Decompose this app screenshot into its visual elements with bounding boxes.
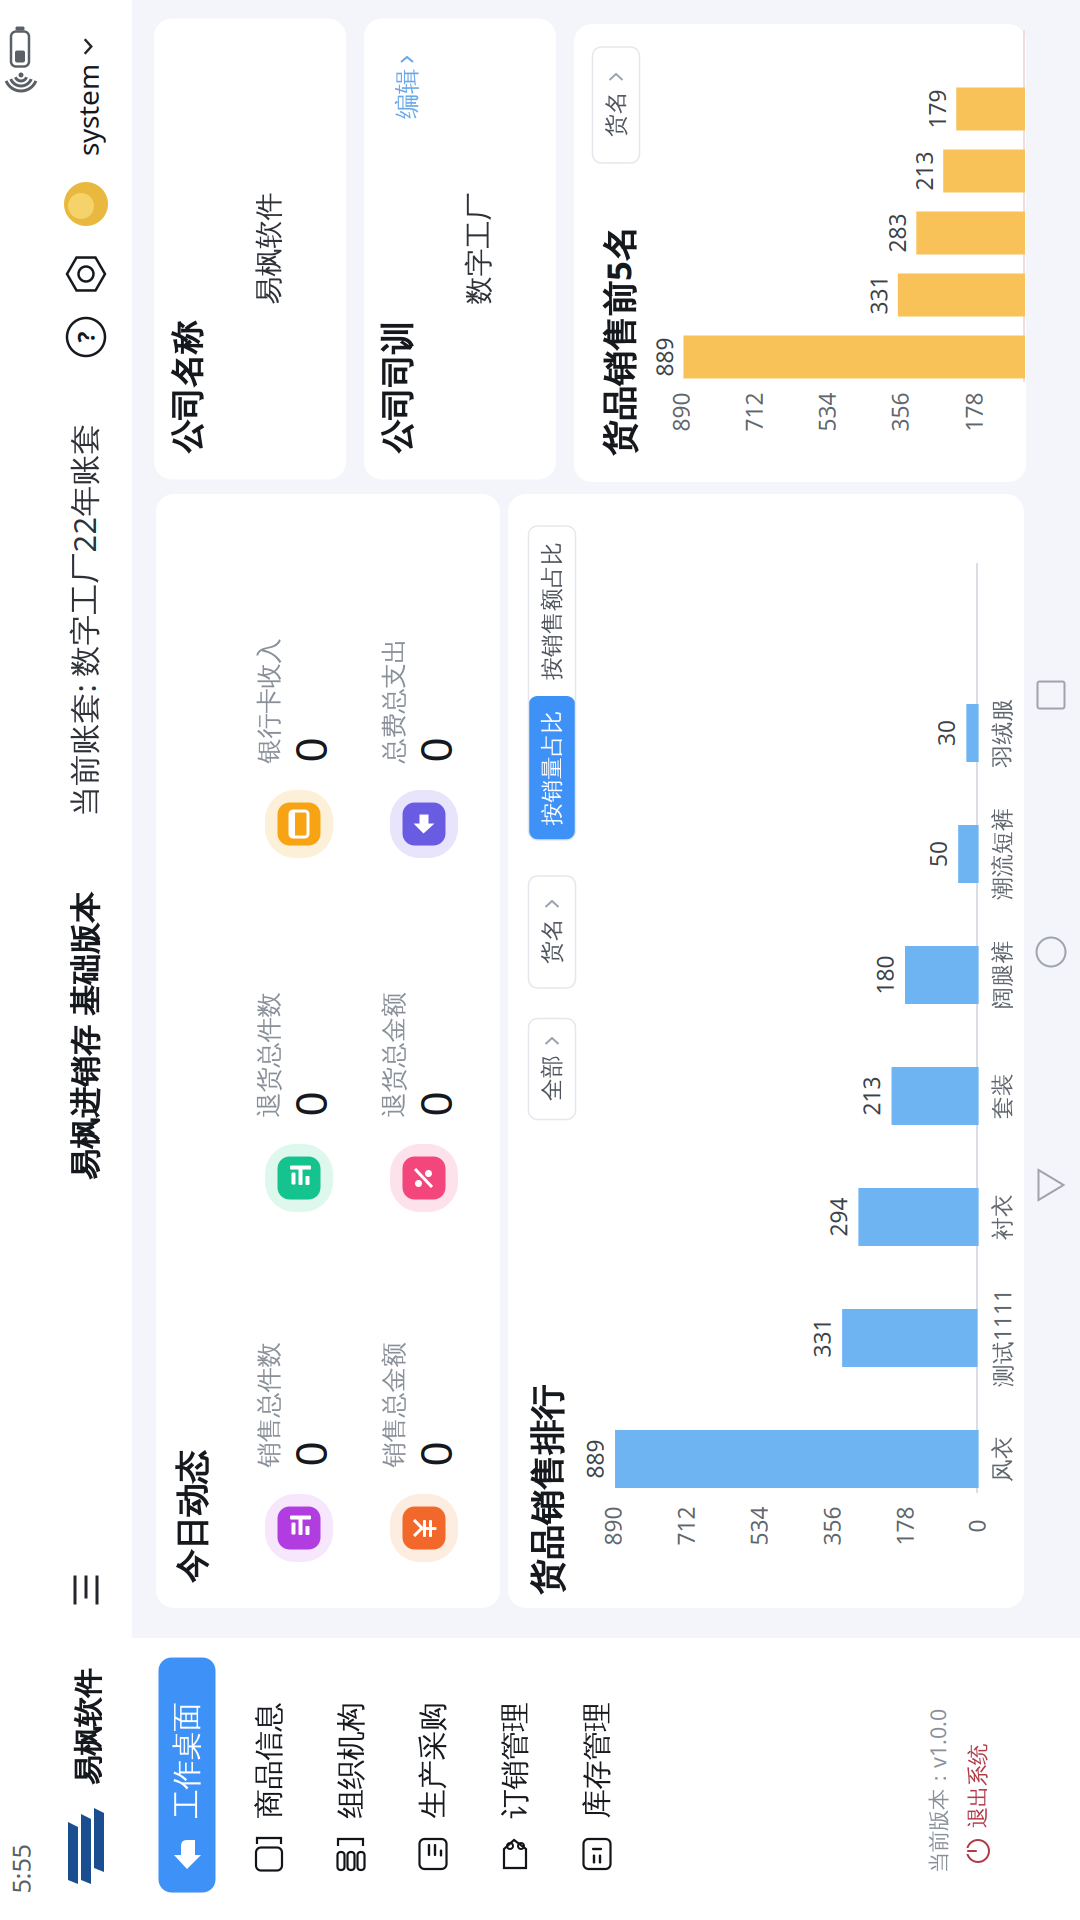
staticText: 0 [383,826,408,884]
staticText: 潮流短裤 [600,1409,692,1436]
staticText: 销售总件数 [32,673,157,704]
staticText: 易枫进销存 基础版本 [320,486,608,524]
staticText: 退货总金额 [382,798,507,829]
button[interactable]: 按销售额占比 [804,948,974,995]
staticText: 按销售额占比 [820,958,958,986]
staticText: 退货总件数 [382,673,507,704]
button[interactable]: 主页 [533,1456,562,1485]
staticText: 货名 [536,958,582,986]
staticText: 羽绒服 [732,1409,801,1436]
staticText: 阔腿裤 [490,1409,559,1436]
staticText: 0 [383,701,408,759]
staticText: 货品销售排行 [0,946,115,988]
staticText: 当前账套: 数字工厂22年账套 [683,484,1076,524]
staticText: 套装 [381,1409,427,1436]
button[interactable]: 全部 [380,948,481,995]
button[interactable]: 返回 [299,1456,331,1485]
button[interactable]: 货名 [512,948,624,995]
staticText: 销售总金额 [32,798,157,829]
staticText: 衬衣 [260,1409,306,1436]
staticText: 测试1111 [113,1407,211,1438]
staticText: 331 [142,1227,181,1257]
